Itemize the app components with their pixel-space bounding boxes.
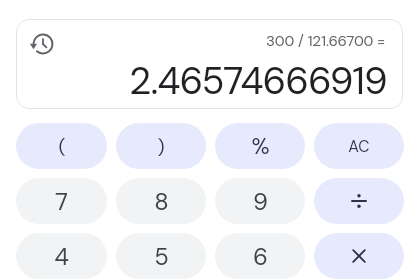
staticText: 8 (154, 186, 169, 217)
staticText: 6 (253, 241, 268, 272)
staticText: 5 (154, 241, 169, 272)
staticText: 300 / 121.66700 = (266, 31, 386, 51)
staticText: ( (58, 134, 66, 159)
button[interactable] (32, 33, 54, 55)
button[interactable]: ( (16, 123, 107, 169)
button[interactable] (314, 178, 404, 224)
button[interactable]: 6 (215, 233, 305, 279)
staticText: 2.46574666919 (129, 56, 387, 105)
button[interactable]: 5 (116, 233, 206, 279)
button[interactable]: 4 (16, 233, 107, 279)
staticText: 4 (54, 241, 69, 272)
staticText: ) (157, 134, 165, 159)
staticText: AC (348, 136, 370, 157)
button[interactable]: AC (314, 123, 404, 169)
button[interactable]: ) (116, 123, 206, 169)
staticText: % (251, 132, 270, 161)
button[interactable] (314, 233, 404, 279)
button[interactable]: 8 (116, 178, 206, 224)
staticText: 9 (253, 186, 268, 217)
button[interactable]: % (215, 123, 305, 169)
staticText: 7 (55, 186, 68, 217)
button[interactable]: 9 (215, 178, 305, 224)
button[interactable]: 7 (16, 178, 107, 224)
